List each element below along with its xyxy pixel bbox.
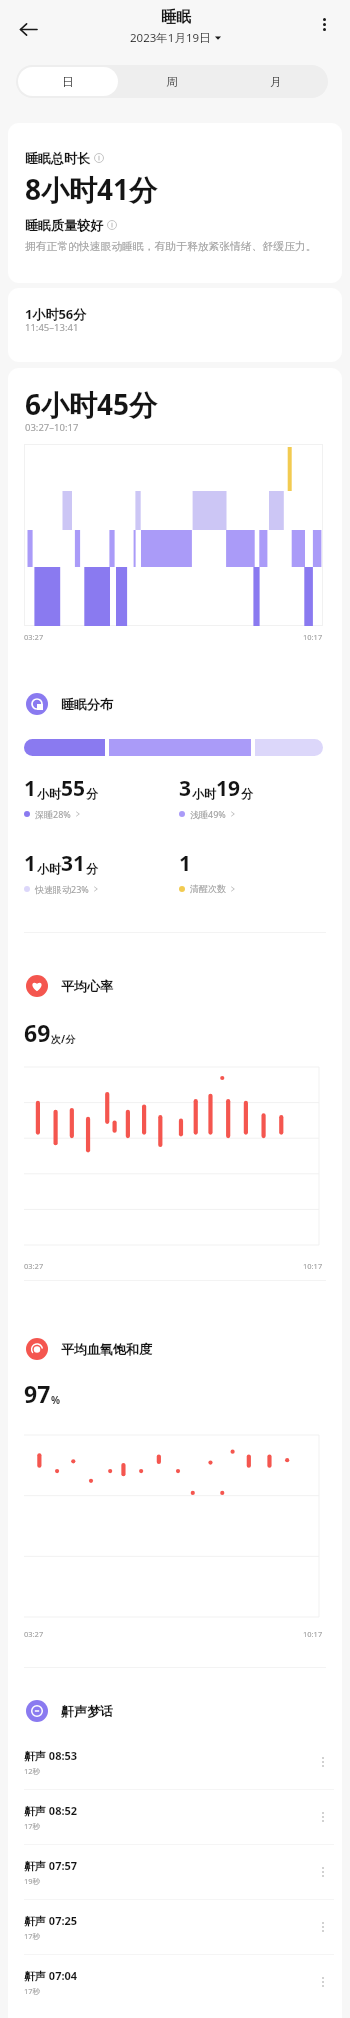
staticText: 月: [270, 75, 282, 89]
button[interactable]: 鼾声 08:53: [8, 1735, 342, 1789]
staticText: 鼾声 08:53: [24, 1748, 78, 1763]
staticText: 2023年1月19日: [130, 30, 211, 46]
button[interactable]: 鼾声 07:04: [8, 1955, 342, 2009]
button[interactable]: 月: [224, 65, 328, 98]
staticText: 小时: [37, 786, 61, 801]
staticText: 睡眠: [161, 8, 191, 27]
button[interactable]: More: [314, 1753, 332, 1771]
staticText: 17秒: [24, 1821, 41, 1831]
staticText: 17秒: [24, 1931, 41, 1941]
staticText: 鼾声 07:04: [24, 1968, 78, 1983]
button[interactable]: 3: [179, 774, 334, 820]
staticText: 睡眠总时长: [25, 150, 90, 166]
button[interactable]: 2023年1月19日: [130, 30, 221, 46]
staticText: 睡眠分布: [61, 696, 113, 712]
staticText: 周: [166, 75, 178, 89]
staticText: 10:17: [303, 1629, 323, 1639]
staticText: 1: [179, 849, 192, 878]
staticText: 深睡28%: [35, 808, 71, 820]
staticText: 69: [24, 1017, 51, 1048]
staticText: 鼾声 07:57: [24, 1858, 78, 1873]
staticText: 11:45–13:41: [25, 321, 79, 334]
staticText: 平均血氧饱和度: [61, 1341, 152, 1357]
staticText: 分: [86, 786, 98, 801]
staticText: 分: [241, 786, 253, 801]
staticText: 17秒: [24, 1986, 41, 1996]
staticText: 拥有正常的快速眼动睡眠，有助于释放紧张情绪、舒缓压力。: [25, 240, 317, 254]
staticText: 97: [24, 1378, 51, 1409]
staticText: 清醒次数: [190, 883, 226, 894]
staticText: 12秒: [24, 1766, 41, 1776]
staticText: 浅睡49%: [190, 808, 226, 820]
staticText: 03:27–10:17: [25, 421, 79, 434]
staticText: 8小时41分: [25, 170, 158, 208]
staticText: 日: [62, 75, 74, 89]
button[interactable]: Back: [8, 9, 48, 49]
button[interactable]: 1: [24, 849, 179, 895]
staticText: 19: [216, 774, 241, 803]
staticText: 6小时45分: [25, 385, 158, 423]
staticText: 03:27: [24, 1261, 44, 1271]
staticText: 31: [61, 849, 86, 878]
button[interactable]: More: [314, 1863, 332, 1881]
staticText: 3: [179, 774, 192, 803]
staticText: 分: [86, 861, 98, 876]
button[interactable]: More: [314, 1973, 332, 1991]
staticText: 鼾声 08:52: [24, 1803, 78, 1818]
staticText: 平均心率: [61, 978, 113, 994]
staticText: 03:27: [24, 632, 44, 642]
button[interactable]: 鼾声 07:57: [8, 1845, 342, 1899]
staticText: 19秒: [24, 1876, 41, 1886]
staticText: 55: [61, 774, 86, 803]
button[interactable]: 鼾声 07:25: [8, 1900, 342, 1954]
button[interactable]: 1: [24, 774, 179, 820]
button[interactable]: 鼾声 08:52: [8, 1790, 342, 1844]
staticText: 鼾声 07:25: [24, 1913, 78, 1928]
staticText: 1: [24, 774, 37, 803]
button[interactable]: 1: [179, 849, 334, 894]
button[interactable]: 周: [120, 65, 224, 98]
staticText: 1小时56分: [25, 305, 87, 323]
staticText: 次/分: [51, 1032, 76, 1046]
button[interactable]: 日: [18, 67, 118, 96]
staticText: 03:27: [24, 1629, 44, 1639]
staticText: 快速眼动23%: [35, 883, 89, 895]
button[interactable]: More: [314, 1808, 332, 1826]
staticText: 1: [24, 849, 37, 878]
staticText: 10:17: [303, 632, 323, 642]
staticText: 10:17: [303, 1261, 323, 1271]
staticText: 小时: [37, 861, 61, 876]
staticText: 鼾声梦话: [61, 1703, 113, 1719]
staticText: %: [51, 1393, 61, 1407]
staticText: 小时: [192, 786, 216, 801]
staticText: 睡眠质量较好: [25, 217, 103, 233]
button[interactable]: More: [314, 1918, 332, 1936]
button[interactable]: More options: [306, 6, 342, 42]
